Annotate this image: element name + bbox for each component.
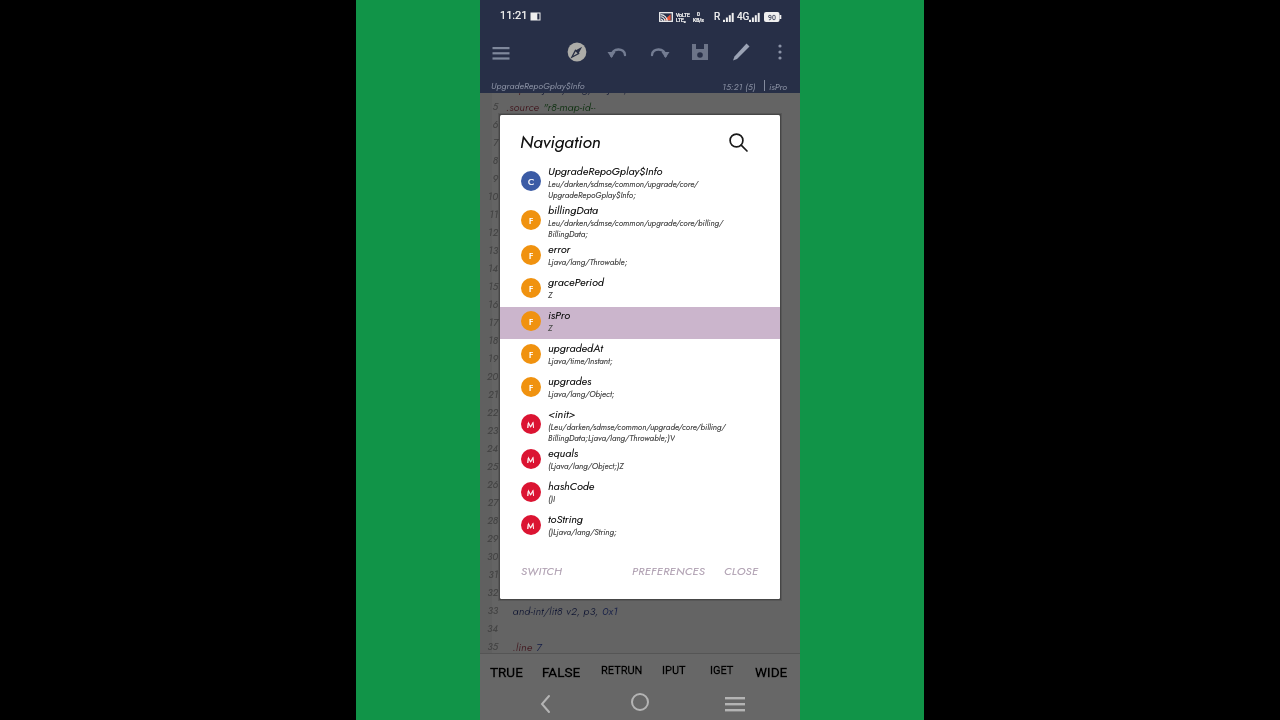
button[interactable]: M xyxy=(500,472,780,505)
staticText: "r8-map-id-· xyxy=(543,99,597,115)
staticText: UpgradeRepoGplay$Info; xyxy=(548,189,636,200)
staticText: M xyxy=(527,418,535,431)
staticText: # instance fields xyxy=(506,135,581,151)
staticText: billingData xyxy=(548,202,599,218)
staticText: upgrades xyxy=(548,373,592,389)
staticText: 28 xyxy=(480,513,498,527)
button[interactable]: SWITCH xyxy=(517,558,567,584)
staticText: F xyxy=(529,282,534,295)
button[interactable]: IGET xyxy=(706,660,738,681)
staticText: C xyxy=(528,175,535,188)
button[interactable]: F xyxy=(500,367,780,400)
staticText: .line xyxy=(506,315,536,331)
staticText: ()Ljava/lang/String; xyxy=(548,526,617,538)
staticText: 5 xyxy=(480,99,498,113)
staticText: M xyxy=(527,453,535,466)
staticText: 0 xyxy=(697,11,700,17)
staticText: 24 xyxy=(480,441,498,455)
button[interactable]: F xyxy=(500,235,780,268)
staticText: error xyxy=(548,241,571,257)
staticText: constructor xyxy=(547,243,597,259)
staticText: WIDE xyxy=(755,664,788,680)
button[interactable]: CLOSE xyxy=(720,558,763,584)
button[interactable]: Save xyxy=(688,40,712,64)
staticText: 6 xyxy=(480,117,498,131)
staticText: goto xyxy=(506,567,537,583)
button[interactable]: FALSE xyxy=(538,660,585,684)
staticText: 2 xyxy=(546,279,553,295)
staticText: Leu/darken/sdmse/common/upgrade/core/ xyxy=(548,178,699,190)
staticText: 15 xyxy=(480,279,498,293)
staticText: 9 xyxy=(480,171,498,185)
staticText: Ljava/lang/Throwable; xyxy=(548,256,628,268)
button[interactable]: M xyxy=(500,400,780,439)
staticText: PREFERENCES xyxy=(632,563,706,579)
button[interactable]: Home xyxy=(631,693,649,711)
button[interactable]: M xyxy=(500,439,780,472)
staticText: upgradedAt xyxy=(548,340,603,356)
button[interactable]: Redo xyxy=(647,40,671,64)
button[interactable]: PREFERENCES xyxy=(628,558,710,584)
staticText: RETRUN xyxy=(601,664,643,677)
button[interactable]: M xyxy=(500,505,780,538)
staticText: and-int/lit8 xyxy=(506,603,566,619)
button[interactable]: Edit xyxy=(729,40,753,64)
staticText: TRUE xyxy=(490,664,523,680)
staticText: 12 xyxy=(480,225,498,239)
button[interactable]: Search xyxy=(727,131,751,155)
button[interactable]: RETRUN xyxy=(597,660,647,681)
staticText: Ljava/lang/Object; xyxy=(548,388,615,400)
staticText: 26 xyxy=(480,477,498,491)
staticText: 33 xyxy=(480,603,498,617)
button[interactable]: F xyxy=(500,196,780,235)
staticText: 18 xyxy=(480,333,498,347)
button[interactable]: F xyxy=(500,268,780,301)
staticText: <init> xyxy=(548,406,576,422)
staticText: CLOSE xyxy=(724,563,759,579)
staticText: .line xyxy=(506,639,536,655)
staticText: IGET xyxy=(710,664,734,677)
staticText: .end method xyxy=(506,423,571,439)
staticText: 20 xyxy=(480,369,498,383)
staticText: .locals xyxy=(506,279,546,295)
staticText: IPUT xyxy=(662,664,686,677)
staticText: isPro xyxy=(548,307,571,323)
staticText: (Ljava/lang/Object;)Z xyxy=(548,460,624,472)
staticText: .source xyxy=(506,99,543,115)
staticText: :goto_0 xyxy=(537,567,573,583)
staticText: 90 xyxy=(768,14,776,22)
staticText: upgradedAt xyxy=(548,340,603,356)
button[interactable]: IPUT xyxy=(658,660,690,681)
button[interactable]: WIDE xyxy=(751,660,792,684)
staticText: (Ljava/lang/Object;)Z xyxy=(548,460,624,472)
staticText: invoke-direct xyxy=(506,351,570,367)
button[interactable]: Back xyxy=(537,693,555,711)
staticText: error xyxy=(548,241,571,257)
button[interactable]: More options xyxy=(768,40,792,64)
staticText: .method xyxy=(506,243,547,259)
staticText: .field xyxy=(506,189,533,205)
staticText: M xyxy=(527,486,535,499)
button[interactable]: F xyxy=(500,301,780,334)
staticText: 11:21 xyxy=(500,9,528,22)
staticText: 35 xyxy=(480,639,498,653)
staticText: FALSE xyxy=(542,664,581,680)
button[interactable]: F xyxy=(500,334,780,367)
staticText: 4G xyxy=(737,11,750,23)
staticText: F xyxy=(529,214,534,227)
staticText: (Leu/darken/sdmse/common/upgrade/core/bi… xyxy=(548,421,726,433)
button[interactable]: Menu xyxy=(489,40,513,64)
staticText: 31 xyxy=(480,567,498,581)
staticText: Ljava/lang/Throwable; xyxy=(548,256,628,268)
staticText: M xyxy=(527,519,535,532)
staticText: if-eqz xyxy=(506,495,541,511)
button[interactable]: C xyxy=(500,157,780,196)
staticText: 17 xyxy=(480,315,498,329)
button[interactable]: Recent apps xyxy=(724,693,742,711)
staticText: Ljava/lang/Object; xyxy=(548,388,615,400)
button[interactable]: Navigate xyxy=(565,40,589,64)
button[interactable]: TRUE xyxy=(486,660,527,684)
button[interactable]: Undo xyxy=(606,40,630,64)
